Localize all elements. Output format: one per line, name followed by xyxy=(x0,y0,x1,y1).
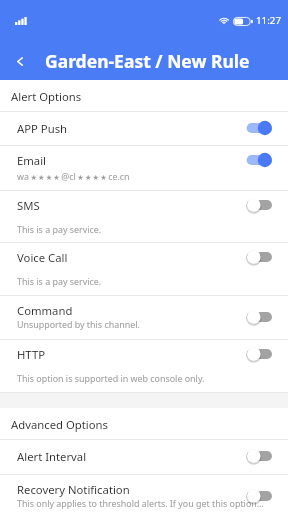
button[interactable]: APP Push xyxy=(0,112,288,145)
staticText: This only applies to threshold alerts. I… xyxy=(17,497,264,509)
button[interactable]: Recovery Notification xyxy=(0,475,288,512)
staticText: Voice Call xyxy=(17,250,68,265)
button[interactable]: Alert Interval xyxy=(0,440,288,474)
staticText: APP Push xyxy=(17,121,68,136)
button[interactable]: Switch on xyxy=(244,152,272,168)
staticText: HTTP xyxy=(17,347,45,362)
button[interactable]: Switch off xyxy=(244,448,272,464)
button[interactable]: Switch off xyxy=(244,346,272,362)
button[interactable]: Switch off xyxy=(244,197,272,213)
staticText: Command xyxy=(17,303,73,318)
button[interactable]: Switch off xyxy=(244,249,272,265)
button[interactable]: HTTP xyxy=(0,340,288,392)
staticText: Alert Options xyxy=(11,89,82,104)
button[interactable]: Email xyxy=(0,146,288,190)
staticText: This option is supported in web console … xyxy=(17,372,205,384)
button[interactable]: Switch off xyxy=(244,488,272,504)
staticText: wa ★ ★ ★ ★ @cl ★ ★ ★ ★ ce.cn xyxy=(17,170,130,182)
staticText: Email xyxy=(17,153,47,168)
staticText: 11:27 xyxy=(256,14,282,27)
staticText: Advanced Options xyxy=(11,417,108,432)
button[interactable]: Back xyxy=(4,46,35,77)
staticText: Garden-East / New Rule xyxy=(45,49,250,73)
staticText: Alert Interval xyxy=(17,449,87,464)
button[interactable]: Switch off xyxy=(244,309,272,325)
staticText: SMS xyxy=(17,198,40,213)
staticText: This is a pay service. xyxy=(17,223,102,235)
button[interactable]: Switch on xyxy=(244,120,272,136)
staticText: Unsupported by this channel. xyxy=(17,318,140,330)
button[interactable]: Command xyxy=(0,296,288,339)
staticText: Recovery Notification xyxy=(17,482,130,497)
button[interactable]: SMS xyxy=(0,191,288,242)
button[interactable]: Voice Call xyxy=(0,243,288,295)
staticText: This is a pay service. xyxy=(17,275,102,287)
